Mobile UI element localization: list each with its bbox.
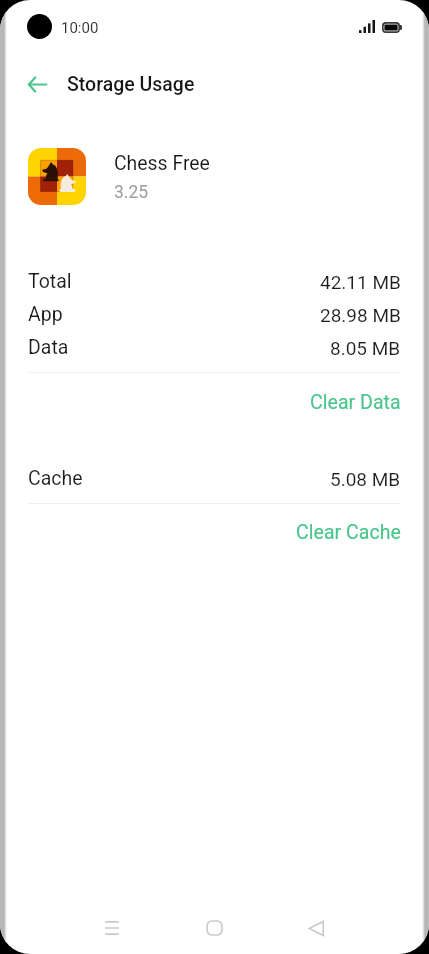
staticText: 42.11 MB xyxy=(320,271,401,293)
staticText: App xyxy=(28,303,63,326)
staticText: 3.25 xyxy=(114,182,149,203)
button[interactable]: Home xyxy=(180,907,248,949)
staticText: 5.08 MB xyxy=(330,468,401,490)
staticText: Chess Free xyxy=(114,152,210,175)
staticText: Clear Cache xyxy=(296,521,401,544)
button[interactable]: Back xyxy=(282,907,350,949)
button[interactable]: Back xyxy=(15,62,59,106)
staticText: Clear Data xyxy=(310,391,401,414)
button[interactable]: Clear Data xyxy=(309,390,402,415)
staticText: 28.98 MB xyxy=(320,304,401,326)
button[interactable]: Clear Cache xyxy=(295,520,402,545)
staticText: 8.05 MB xyxy=(330,337,401,359)
staticText: Total xyxy=(28,270,72,293)
staticText: 10:00 xyxy=(61,19,99,37)
staticText: Data xyxy=(28,336,69,359)
staticText: Cache xyxy=(28,467,83,490)
button[interactable]: Recent apps xyxy=(78,907,146,949)
staticText: Storage Usage xyxy=(67,73,195,96)
